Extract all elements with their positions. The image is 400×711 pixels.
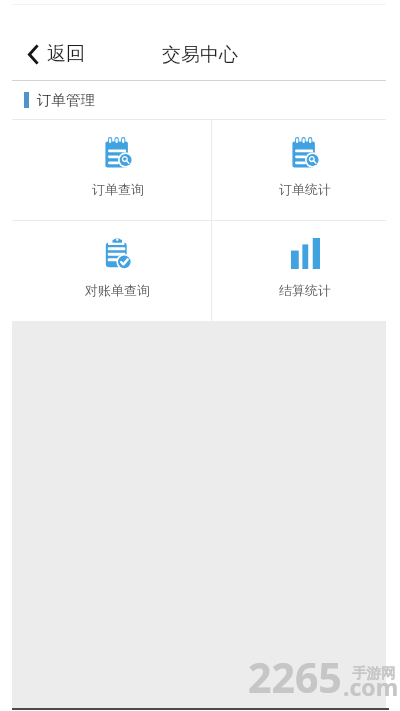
staticText: 返回	[47, 42, 85, 66]
button[interactable]: 返回	[25, 36, 88, 72]
staticText: 对账单查询	[85, 282, 150, 298]
staticText: 交易中心	[162, 43, 238, 67]
staticText: 订单查询	[92, 181, 144, 197]
button[interactable]: 结算统计	[212, 221, 400, 321]
button[interactable]: 对账单查询	[0, 221, 211, 321]
staticText: .com	[343, 671, 399, 702]
staticText: 结算统计	[279, 282, 331, 298]
staticText: 2265	[248, 649, 342, 705]
staticText: 手游网	[352, 664, 396, 682]
staticText: 订单统计	[279, 181, 331, 197]
button[interactable]: 订单统计	[212, 120, 400, 220]
button[interactable]: 订单查询	[0, 120, 211, 220]
other: 返回	[28, 44, 39, 65]
staticText: 订单管理	[37, 91, 95, 109]
